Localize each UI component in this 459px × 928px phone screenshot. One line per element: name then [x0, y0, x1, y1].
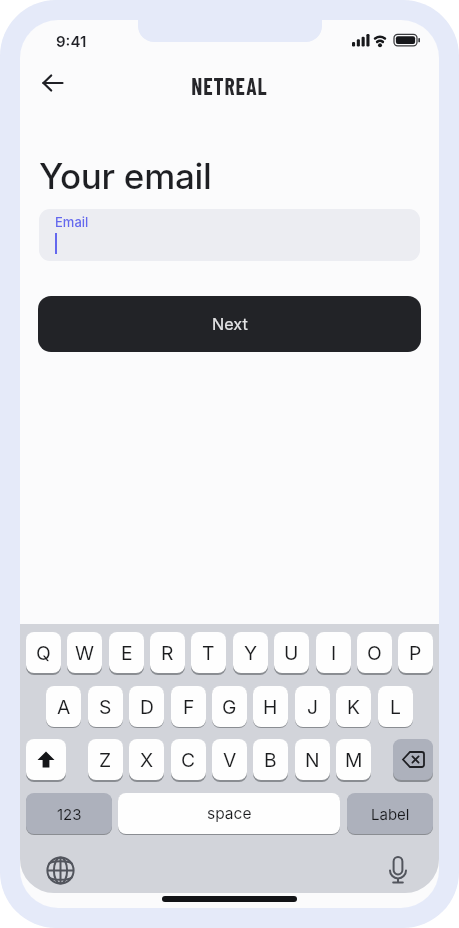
- button[interactable]: [393, 739, 433, 780]
- staticText: Your email: [39, 155, 212, 197]
- staticText: R: [161, 641, 174, 664]
- button[interactable]: 123: [26, 793, 112, 834]
- button[interactable]: X: [129, 739, 164, 780]
- button[interactable]: U: [274, 632, 309, 673]
- staticText: Next: [212, 314, 248, 334]
- button[interactable]: M: [336, 739, 371, 780]
- staticText: Label: [371, 805, 410, 823]
- button[interactable]: S: [88, 686, 123, 727]
- button[interactable]: G: [212, 686, 247, 727]
- button[interactable]: [46, 856, 75, 885]
- button[interactable]: D: [129, 686, 164, 727]
- button[interactable]: B: [253, 739, 288, 780]
- button[interactable]: H: [253, 686, 288, 727]
- button[interactable]: R: [150, 632, 185, 673]
- staticText: I: [331, 641, 337, 664]
- staticText: H: [263, 695, 278, 718]
- button[interactable]: W: [67, 632, 102, 673]
- button[interactable]: Next: [38, 296, 421, 352]
- staticText: X: [140, 748, 154, 771]
- button[interactable]: V: [212, 739, 247, 780]
- staticText: Q: [36, 641, 51, 664]
- staticText: L: [390, 695, 401, 718]
- button[interactable]: F: [171, 686, 206, 727]
- staticText: Y: [244, 641, 258, 664]
- staticText: W: [75, 641, 95, 664]
- staticText: S: [99, 695, 112, 718]
- button[interactable]: A: [46, 686, 81, 727]
- staticText: T: [202, 641, 215, 664]
- staticText: E: [121, 641, 133, 664]
- staticText: 9:41: [56, 32, 87, 50]
- button[interactable]: L: [378, 686, 413, 727]
- staticText: Z: [99, 748, 112, 771]
- staticText: Email: [55, 214, 89, 230]
- staticText: 123: [57, 805, 82, 823]
- button[interactable]: Y: [233, 632, 268, 673]
- staticText: M: [345, 748, 363, 771]
- staticText: NETREAL: [191, 70, 268, 99]
- button[interactable]: T: [191, 632, 226, 673]
- button[interactable]: Label: [347, 793, 433, 834]
- button[interactable]: Q: [26, 632, 61, 673]
- button[interactable]: [36, 66, 70, 100]
- staticText: U: [284, 641, 299, 664]
- staticText: J: [307, 695, 319, 718]
- staticText: D: [140, 695, 154, 718]
- button[interactable]: Z: [88, 739, 123, 780]
- staticText: space: [207, 804, 252, 823]
- staticText: K: [347, 695, 360, 718]
- button[interactable]: P: [398, 632, 433, 673]
- button[interactable]: [26, 739, 66, 780]
- staticText: P: [409, 641, 422, 664]
- staticText: G: [222, 695, 237, 718]
- button[interactable]: Email: [39, 209, 420, 261]
- button[interactable]: K: [336, 686, 371, 727]
- button[interactable]: C: [171, 739, 206, 780]
- button[interactable]: N: [295, 739, 330, 780]
- staticText: B: [264, 748, 277, 771]
- staticText: O: [367, 641, 382, 664]
- button[interactable]: O: [357, 632, 392, 673]
- button[interactable]: E: [109, 632, 144, 673]
- staticText: F: [183, 695, 195, 718]
- button[interactable]: space: [118, 793, 340, 834]
- staticText: N: [305, 748, 320, 771]
- staticText: A: [57, 695, 71, 718]
- staticText: C: [181, 748, 196, 771]
- button[interactable]: I: [316, 632, 351, 673]
- button[interactable]: [384, 856, 412, 884]
- staticText: V: [223, 748, 237, 771]
- button[interactable]: J: [295, 686, 330, 727]
